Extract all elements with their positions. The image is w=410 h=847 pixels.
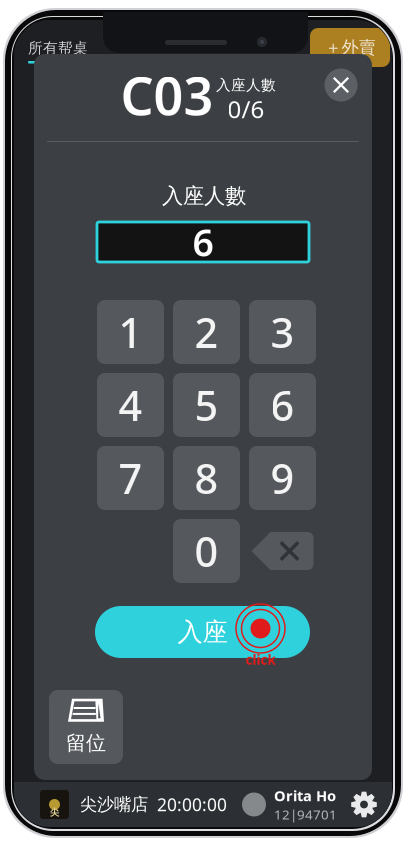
button[interactable]: 所有帮桌 bbox=[28, 39, 108, 79]
button[interactable]: 7 bbox=[97, 446, 164, 510]
staticText: 入座人數 bbox=[216, 76, 276, 94]
staticText: 尖沙嘴店 bbox=[80, 794, 148, 815]
staticText: 留位 bbox=[66, 731, 106, 755]
button[interactable]: 6 bbox=[249, 373, 316, 437]
button[interactable]: Close bbox=[319, 63, 363, 107]
staticText: 20:00:00 bbox=[157, 793, 227, 816]
staticText: 1 bbox=[118, 305, 142, 359]
staticText: ＋外賣 bbox=[324, 37, 375, 58]
button[interactable]: 入座 bbox=[95, 606, 310, 658]
staticText: 12|94701 bbox=[274, 805, 337, 823]
button[interactable]: 0 bbox=[173, 519, 240, 583]
button[interactable]: 5 bbox=[173, 373, 240, 437]
staticText: 6 bbox=[192, 217, 213, 267]
button[interactable]: ＋外賣 bbox=[310, 28, 390, 67]
button[interactable]: 1 bbox=[97, 300, 164, 364]
staticText: 4 bbox=[118, 378, 142, 432]
button[interactable]: Settings bbox=[348, 788, 380, 820]
button[interactable]: 3 bbox=[249, 300, 316, 364]
staticText: 入座 bbox=[177, 616, 227, 647]
staticText: 0/6 bbox=[227, 93, 264, 125]
staticText: 9 bbox=[270, 451, 294, 505]
staticText: 7 bbox=[118, 451, 142, 505]
staticText: 入座人數 bbox=[162, 183, 246, 209]
button[interactable]: 9 bbox=[249, 446, 316, 510]
staticText: 尖 bbox=[50, 807, 59, 818]
staticText: Orita Ho bbox=[274, 786, 336, 805]
staticText: 8 bbox=[194, 451, 218, 505]
button[interactable]: 留位 bbox=[49, 690, 123, 764]
button[interactable]: 4 bbox=[97, 373, 164, 437]
staticText: 5 bbox=[194, 378, 218, 432]
staticText: 所有帮桌 bbox=[28, 39, 88, 57]
button[interactable]: Delete bbox=[249, 519, 316, 583]
staticText: 3 bbox=[270, 305, 294, 359]
staticText: 2 bbox=[194, 305, 218, 359]
button[interactable]: 2 bbox=[173, 300, 240, 364]
button[interactable]: 8 bbox=[173, 446, 240, 510]
staticText: 0 bbox=[194, 524, 218, 578]
staticText: 6 bbox=[270, 378, 294, 432]
staticText: C03 bbox=[120, 60, 213, 130]
staticText: click bbox=[245, 651, 275, 668]
